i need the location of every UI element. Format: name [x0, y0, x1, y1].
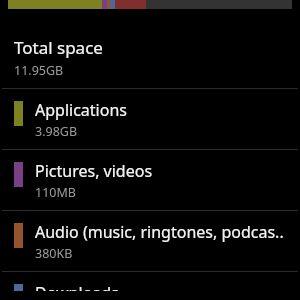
button[interactable]: Downloads colour key: [0, 272, 300, 300]
staticText: 3.98GB: [35, 123, 78, 140]
staticText: 380KB: [35, 245, 73, 262]
button[interactable]: Audio (music, ringtones, podcas.. colour…: [0, 211, 300, 271]
button[interactable]: Total space: [0, 26, 300, 88]
button[interactable]: Pictures, videos colour key: [0, 150, 300, 210]
button[interactable]: Applications colour key: [0, 89, 300, 149]
staticText: Pictures, videos: [35, 160, 153, 182]
staticText: Applications: [35, 99, 127, 121]
staticText: Total space: [14, 36, 103, 59]
staticText: 11.95GB: [14, 62, 64, 79]
staticText: Downloads: [35, 282, 119, 291]
staticText: 110MB: [35, 184, 76, 201]
staticText: Audio (music, ringtones, podcas..: [35, 221, 284, 243]
